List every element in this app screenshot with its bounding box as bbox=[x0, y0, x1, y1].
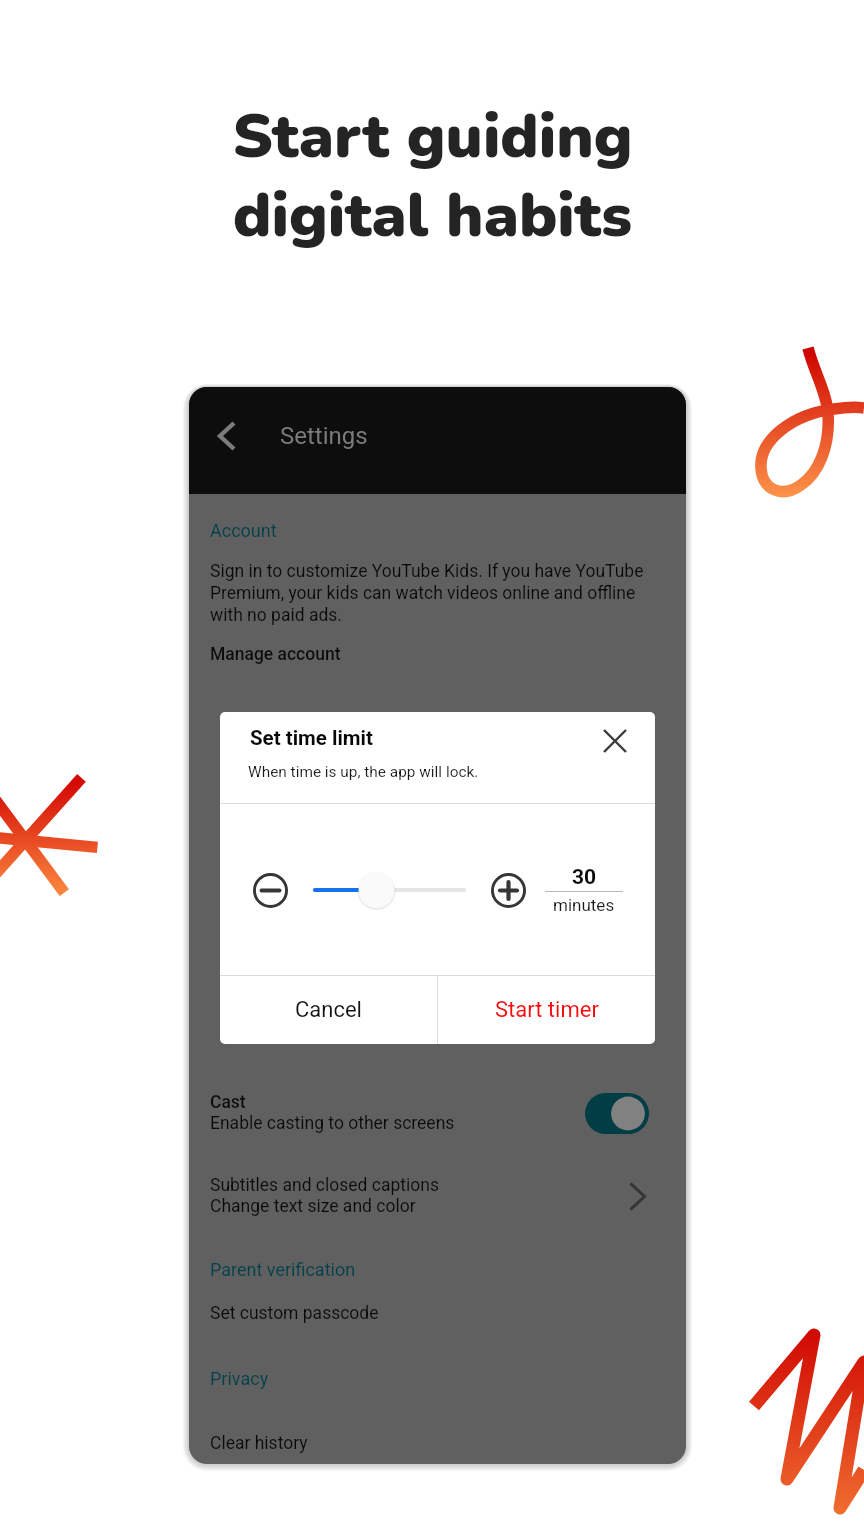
button[interactable]: Subtitles and closed captions bbox=[210, 1173, 665, 1225]
staticText: Start guiding digital habits bbox=[232, 94, 633, 257]
button[interactable]: Cancel bbox=[220, 976, 437, 1044]
staticText: Enable casting to other screens bbox=[210, 1113, 455, 1134]
staticText: Account bbox=[210, 520, 277, 541]
staticText: Clear history bbox=[210, 1433, 308, 1454]
button[interactable]: Close dialog bbox=[592, 718, 638, 764]
staticText: minutes bbox=[553, 895, 615, 915]
staticText: Sign in to customize YouTube Kids. If yo… bbox=[210, 561, 644, 626]
staticText: 30 bbox=[572, 865, 597, 890]
button[interactable]: Back bbox=[205, 414, 249, 458]
button[interactable]: Start timer bbox=[438, 976, 655, 1044]
button[interactable]: Cast bbox=[210, 1090, 665, 1142]
staticText: When time is up, the app will lock. bbox=[248, 763, 479, 781]
staticText: Set custom passcode bbox=[210, 1303, 379, 1324]
staticText: Cancel bbox=[295, 997, 362, 1023]
staticText: Cast bbox=[210, 1092, 246, 1113]
staticText: Parent verification bbox=[210, 1259, 356, 1280]
button[interactable]: Time limit slider bbox=[295, 868, 484, 912]
staticText: Settings bbox=[280, 422, 368, 450]
staticText: Manage account bbox=[210, 644, 341, 665]
button[interactable]: Decrease time limit bbox=[253, 873, 288, 908]
staticText: Start timer bbox=[495, 997, 599, 1023]
staticText: Set time limit bbox=[250, 726, 373, 750]
staticText: Change text size and color bbox=[210, 1196, 416, 1217]
staticText: Subtitles and closed captions bbox=[210, 1175, 439, 1196]
button[interactable]: Increase time limit bbox=[491, 873, 526, 908]
staticText: Privacy bbox=[210, 1368, 269, 1389]
